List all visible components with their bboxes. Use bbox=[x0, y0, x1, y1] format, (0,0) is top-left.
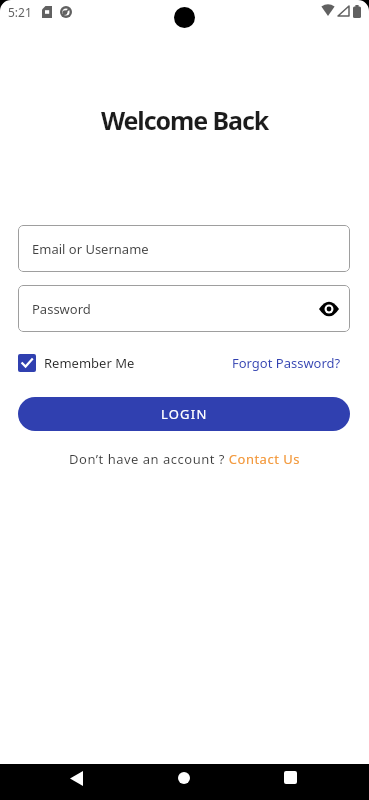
staticText: Password bbox=[32, 300, 91, 318]
button[interactable] bbox=[178, 772, 190, 784]
button[interactable]: Email or Username bbox=[18, 225, 350, 272]
button[interactable]: Don’t have an account ? Contact Us bbox=[0, 450, 369, 468]
staticText: Email or Username bbox=[32, 240, 149, 258]
button[interactable]: Password bbox=[18, 285, 350, 332]
button[interactable] bbox=[70, 771, 83, 786]
button[interactable] bbox=[284, 771, 297, 784]
button[interactable]: LOGIN bbox=[18, 397, 350, 431]
staticText: Welcome Back bbox=[0, 103, 369, 137]
staticText: LOGIN bbox=[161, 405, 208, 423]
staticText: 5:21 bbox=[8, 4, 32, 20]
staticText: Remember Me bbox=[44, 354, 135, 372]
button[interactable] bbox=[319, 302, 339, 316]
button[interactable] bbox=[18, 354, 36, 372]
button[interactable]: Forgot Password? bbox=[232, 354, 341, 372]
